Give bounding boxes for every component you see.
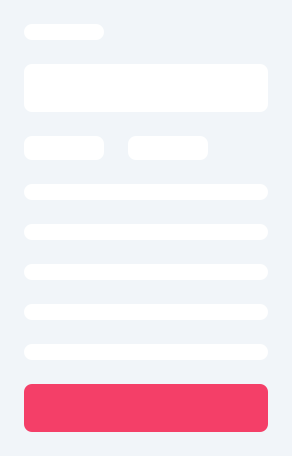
button[interactable]: Continue [24, 384, 268, 432]
